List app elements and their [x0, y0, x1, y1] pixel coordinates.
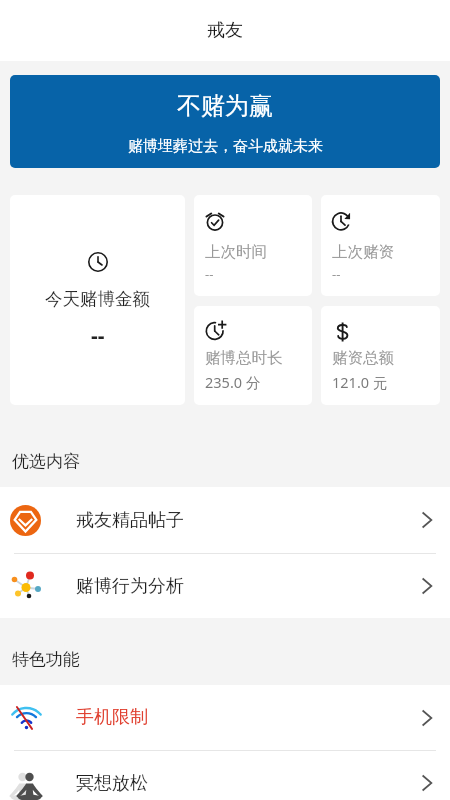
- staticText: 不赌为赢: [177, 91, 273, 121]
- button[interactable]: 不赌为赢: [10, 75, 440, 168]
- staticText: 上次赌资: [332, 242, 394, 262]
- staticText: 特色功能: [12, 649, 80, 670]
- staticText: 冥想放松: [76, 772, 148, 795]
- staticText: 今天赌博金额: [45, 288, 150, 310]
- button[interactable]: 今天赌博金额: [10, 195, 185, 405]
- staticText: 赌博埋葬过去，奋斗成就未来: [128, 137, 323, 156]
- staticText: 优选内容: [12, 451, 80, 472]
- staticText: --: [205, 265, 214, 283]
- button[interactable]: 赌博总时长: [194, 306, 312, 405]
- button[interactable]: 赌资总额: [321, 306, 440, 405]
- staticText: --: [91, 321, 105, 350]
- staticText: 戒友: [207, 19, 243, 42]
- button[interactable]: 手机限制: [0, 685, 450, 750]
- staticText: 121.0 元: [332, 372, 388, 392]
- staticText: 235.0 分: [205, 372, 261, 392]
- button[interactable]: 上次时间: [194, 195, 312, 296]
- staticText: 手机限制: [76, 706, 148, 729]
- staticText: --: [332, 265, 341, 283]
- staticText: 戒友精品帖子: [76, 509, 184, 532]
- staticText: 上次时间: [205, 242, 267, 262]
- button[interactable]: 戒友精品帖子: [0, 487, 450, 553]
- button[interactable]: 赌博行为分析: [0, 554, 450, 618]
- staticText: 赌资总额: [332, 348, 394, 368]
- button[interactable]: 上次赌资: [321, 195, 440, 296]
- button[interactable]: 冥想放松: [0, 751, 450, 800]
- staticText: 赌博总时长: [205, 348, 283, 368]
- staticText: 赌博行为分析: [76, 575, 184, 598]
